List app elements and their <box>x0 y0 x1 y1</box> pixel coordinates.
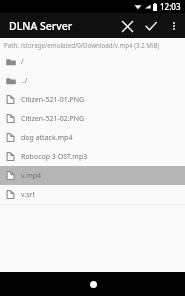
button[interactable]: dog attack.mp4 <box>0 128 185 147</box>
staticText: 12:03 <box>160 1 181 12</box>
button[interactable]: / <box>0 52 185 71</box>
staticText: Path: /storage/emulated/0/Download/v.mp4… <box>4 41 160 49</box>
staticText: / <box>21 57 24 67</box>
button[interactable]: v.mp4 <box>0 166 185 185</box>
button[interactable]: More options <box>163 15 185 37</box>
staticText: DLNA Server <box>9 19 73 33</box>
staticText: Robocop 3 OST.mp3 <box>21 152 88 162</box>
staticText: v.srt <box>21 190 35 200</box>
staticText: v.mp4 <box>21 171 42 181</box>
button[interactable]: Cancel <box>115 14 139 38</box>
staticText: Citizen-521-01.PNG <box>21 95 85 105</box>
button[interactable]: ../ <box>0 71 185 90</box>
staticText: Citizen-521-02.PNG <box>21 114 85 124</box>
button[interactable]: Confirm <box>139 14 163 38</box>
staticText: ../ <box>21 76 28 86</box>
button[interactable]: Citizen-521-01.PNG <box>0 90 185 109</box>
button[interactable]: Home <box>84 275 102 293</box>
staticText: dog attack.mp4 <box>21 133 73 143</box>
button[interactable]: Robocop 3 OST.mp3 <box>0 147 185 166</box>
button[interactable]: v.srt <box>0 185 185 204</box>
button[interactable]: Citizen-521-02.PNG <box>0 109 185 128</box>
